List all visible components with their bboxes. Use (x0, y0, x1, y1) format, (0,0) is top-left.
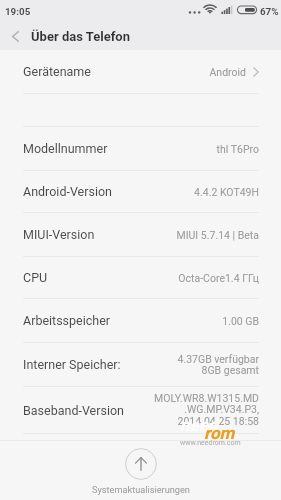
button[interactable]: MIUI-Version (0, 213, 281, 256)
staticText: MOLY.WR8.W1315.MD .WG.MP.V34.P3, 2014.04… (153, 392, 259, 428)
staticText: MIUI 5.7.14 | Beta (176, 229, 259, 241)
staticText: Modellnummer (23, 141, 108, 156)
button[interactable]: Interner Speicher: (0, 343, 281, 386)
staticText: thl T6Pro (216, 143, 259, 155)
button[interactable]: Arbeitsspeicher (0, 299, 281, 342)
button[interactable]: CPU (0, 257, 281, 298)
staticText: 4.4.2 KOT49H (194, 186, 259, 198)
staticText: need (180, 415, 218, 435)
staticText: Baseband-Version (23, 403, 124, 418)
staticText: 1.00 GB (222, 315, 259, 327)
staticText: rom (204, 423, 235, 443)
staticText: Gerätename (23, 64, 91, 79)
staticText: 67% (260, 6, 279, 17)
button[interactable]: Systemaktualisierungen (92, 448, 190, 495)
staticText: MIUI-Version (23, 227, 95, 242)
staticText: Android-Version (23, 184, 112, 199)
button[interactable]: Baseband-Version (0, 387, 281, 433)
button[interactable]: Back (0, 22, 31, 50)
staticText: CPU (23, 270, 48, 285)
staticText: Arbeitsspeicher (23, 313, 111, 328)
staticText: Über das Telefon (31, 29, 131, 44)
staticText: 4.37GB verfügbar 8GB gesamt (177, 353, 259, 377)
staticText: Interner Speicher: (23, 357, 121, 372)
staticText: Android (209, 66, 246, 78)
staticText: www.needrom.com (180, 439, 241, 447)
staticText: Systemaktualisierungen (92, 484, 190, 495)
staticText: Octa-Core1.4 ГГц (178, 272, 259, 284)
button[interactable]: Android-Version (0, 171, 281, 212)
button[interactable]: Gerätename (0, 50, 281, 93)
button[interactable]: Modellnummer (0, 127, 281, 170)
staticText: 19:05 (5, 6, 31, 17)
